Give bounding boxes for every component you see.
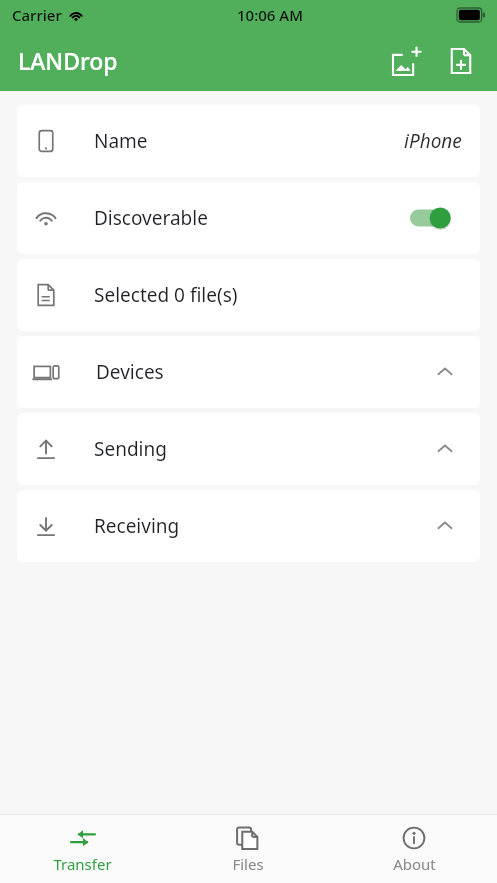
button[interactable]: Transfer: [0, 815, 165, 883]
button[interactable]: About: [331, 815, 497, 883]
staticText: iPhone: [404, 128, 462, 154]
button[interactable]: Discoverable: [17, 182, 480, 254]
button[interactable]: Add image: [385, 39, 429, 83]
button[interactable]: Add file: [439, 39, 483, 83]
staticText: About: [393, 854, 436, 874]
button[interactable]: Files: [165, 815, 331, 883]
staticText: Files: [232, 854, 264, 874]
button[interactable]: Name: [17, 105, 480, 177]
staticText: Sending: [94, 436, 167, 462]
button[interactable]: Discoverable toggle: [410, 203, 462, 233]
staticText: Receiving: [94, 513, 180, 539]
staticText: Name: [94, 128, 148, 154]
button[interactable]: Selected 0 file(s): [17, 259, 480, 331]
staticText: Transfer: [53, 854, 112, 874]
staticText: Devices: [96, 359, 164, 385]
staticText: Selected 0 file(s): [94, 282, 238, 308]
staticText: Carrier: [12, 5, 62, 25]
button[interactable]: Sending: [17, 413, 480, 485]
staticText: 10:06 AM: [237, 5, 303, 25]
staticText: Discoverable: [94, 205, 208, 231]
button[interactable]: Devices: [17, 336, 480, 408]
staticText: LANDrop: [18, 45, 118, 76]
button[interactable]: Receiving: [17, 490, 480, 562]
